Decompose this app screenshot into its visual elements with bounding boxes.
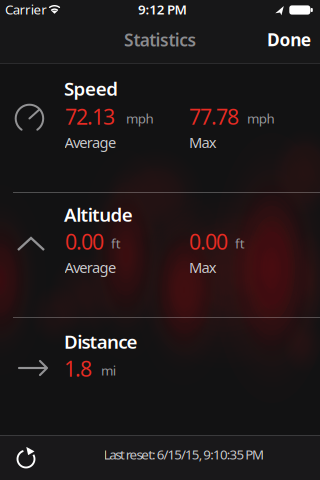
staticText: Average (64, 258, 116, 277)
staticText: Max (189, 258, 217, 277)
staticText: Altitude (64, 202, 133, 227)
staticText: Distance (64, 329, 137, 354)
staticText: Done (267, 28, 311, 51)
staticText: mph (247, 109, 274, 127)
staticText: Max (189, 133, 217, 152)
staticText: 0.00 (65, 227, 104, 255)
staticText: 77.78 (189, 102, 239, 130)
staticText: mph (126, 109, 153, 127)
button[interactable]: Reset statistics (8, 440, 44, 476)
button[interactable]: Done (258, 17, 320, 62)
staticText: Carrier (5, 0, 47, 18)
staticText: 9:12 PM (138, 0, 187, 18)
staticText: ft (235, 234, 245, 252)
staticText: ft (111, 234, 121, 252)
staticText: Average (64, 133, 116, 152)
staticText: 72.13 (65, 102, 115, 130)
staticText: Speed (64, 76, 118, 101)
staticText: Last reset: 6/15/15, 9:10:35 PM (103, 445, 264, 463)
staticText: 1.8 (64, 354, 92, 382)
staticText: 0.00 (189, 227, 228, 255)
staticText: Statistics (124, 28, 197, 51)
staticText: mi (101, 361, 116, 379)
